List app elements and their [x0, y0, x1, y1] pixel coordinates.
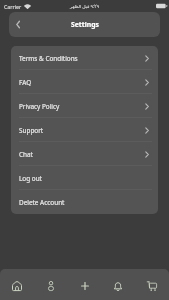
- staticText: Delete Account: [19, 198, 65, 207]
- button[interactable]: Profile: [38, 269, 64, 300]
- staticText: Log out: [19, 174, 42, 183]
- staticText: Settings: [71, 20, 99, 29]
- staticText: ٩:٢٩ قبل الظهر: [70, 3, 100, 9]
- staticText: Chat: [19, 150, 33, 159]
- staticText: Carrier: [4, 3, 22, 10]
- button[interactable]: Delete Account: [11, 190, 158, 214]
- button[interactable]: Back: [9, 12, 26, 37]
- button[interactable]: Support: [11, 118, 158, 142]
- button[interactable]: Notifications: [105, 269, 131, 300]
- staticText: FAQ: [19, 78, 32, 87]
- staticText: Support: [19, 126, 44, 135]
- button[interactable]: Terms & Conditions: [11, 46, 158, 70]
- button[interactable]: FAQ: [11, 70, 158, 94]
- staticText: Privacy Policy: [19, 102, 60, 111]
- button[interactable]: Privacy Policy: [11, 94, 158, 118]
- button[interactable]: Add: [72, 269, 98, 300]
- button[interactable]: Cart: [139, 269, 165, 300]
- button[interactable]: Chat: [11, 142, 158, 166]
- staticText: Terms & Conditions: [19, 54, 78, 63]
- button[interactable]: Log out: [11, 166, 158, 190]
- button[interactable]: Home: [4, 269, 30, 300]
